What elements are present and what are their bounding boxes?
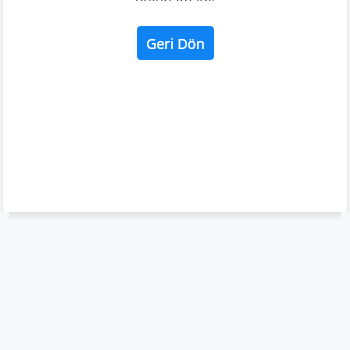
staticText: bulunamadı!: [3, 0, 347, 1]
staticText: Geri Dön: [146, 34, 205, 53]
button[interactable]: Geri Dön: [137, 26, 214, 60]
